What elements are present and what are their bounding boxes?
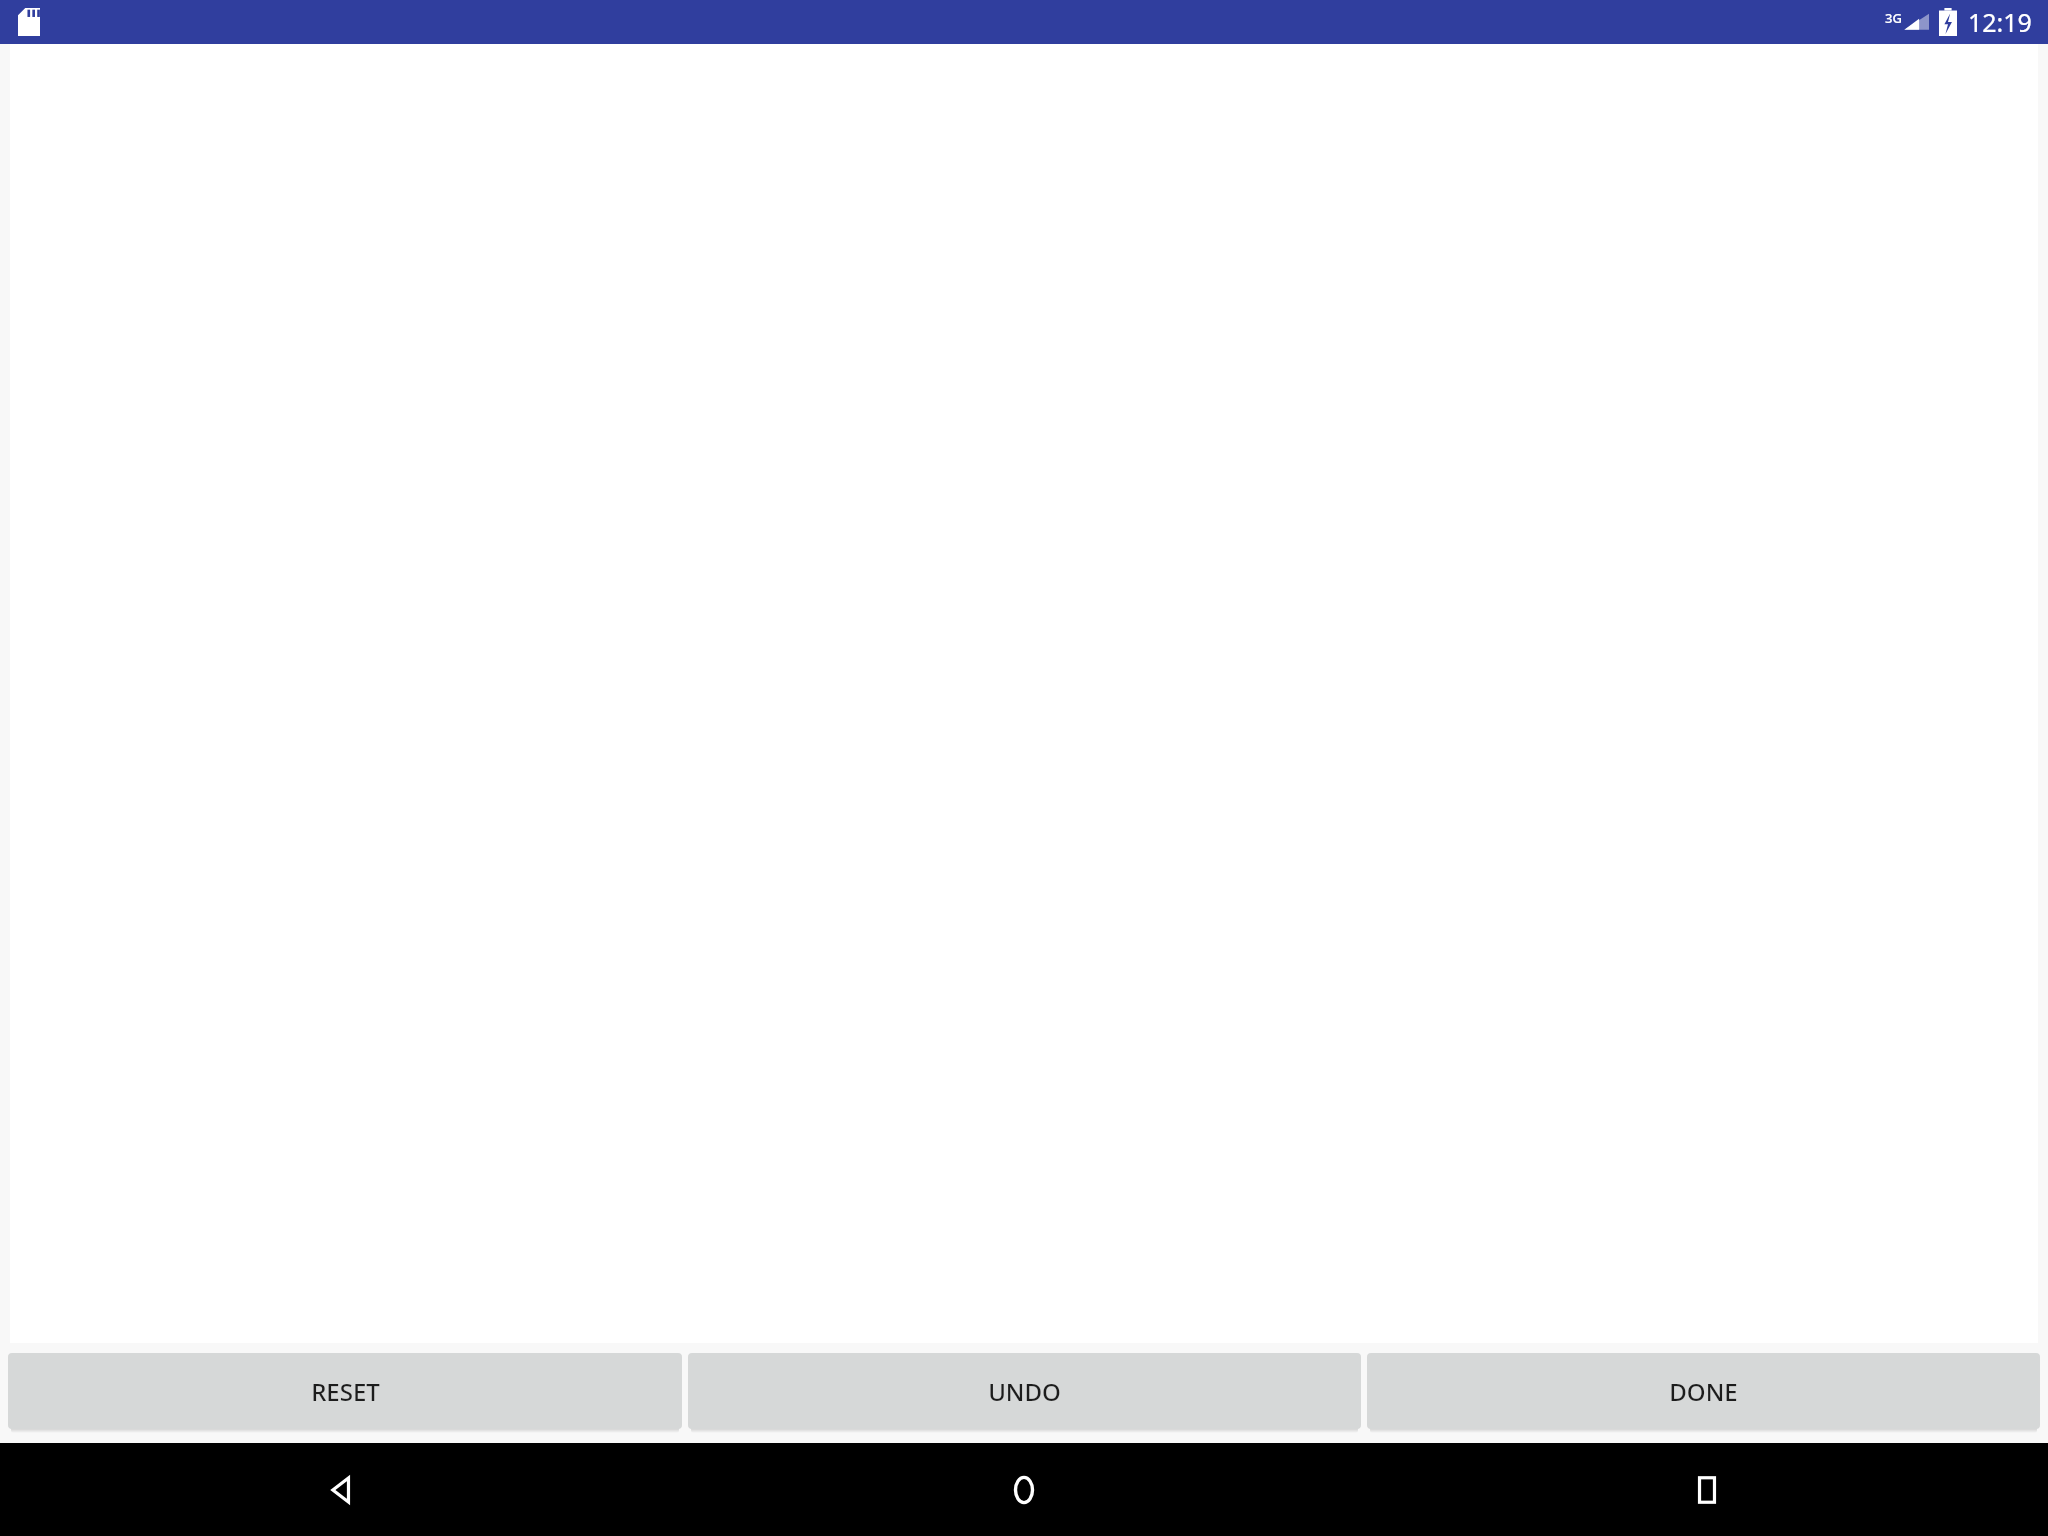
button[interactable]: Back [0,1443,682,1536]
button[interactable]: Recent apps [1365,1443,2048,1536]
staticText: RESET [311,1375,380,1408]
staticText: DONE [1669,1375,1738,1408]
staticText: 12:19 [1968,5,2032,39]
button[interactable]: UNDO [688,1353,1361,1429]
button[interactable]: Home [682,1443,1365,1536]
button[interactable]: RESET [8,1353,682,1429]
button[interactable]: DONE [1367,1353,2040,1429]
staticText: 3G [1885,9,1902,27]
staticText: UNDO [988,1375,1061,1408]
